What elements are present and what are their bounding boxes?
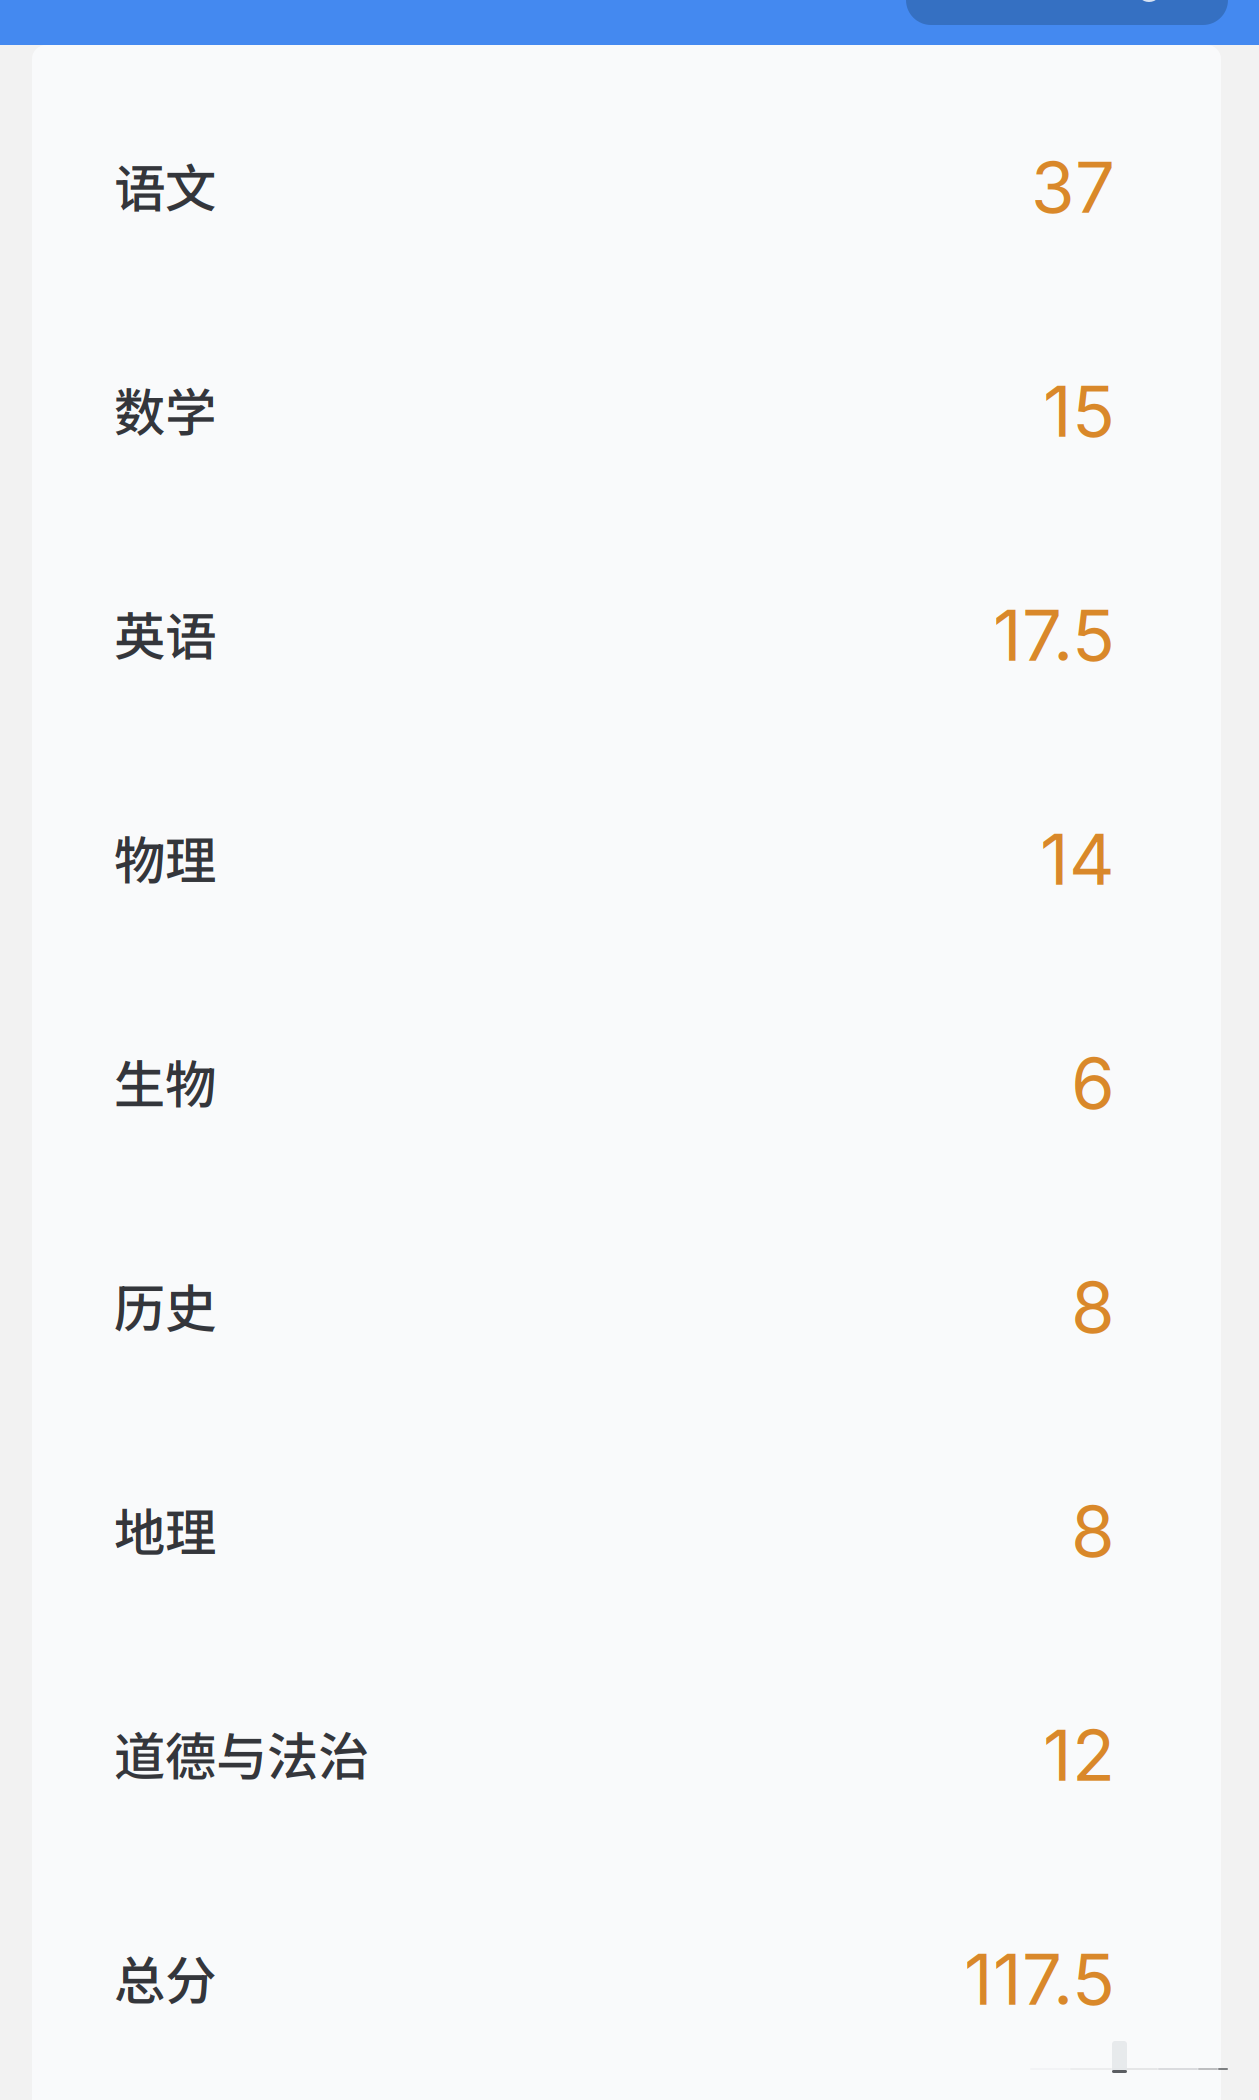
- staticText: 语文: [114, 148, 216, 222]
- staticText: 英语: [114, 596, 216, 670]
- staticText: 15: [1043, 368, 1115, 454]
- staticText: 8: [1071, 1488, 1115, 1574]
- staticText: 道德与法治: [114, 1716, 369, 1790]
- button[interactable]: 物理: [32, 745, 1221, 969]
- staticText: 12: [1043, 1712, 1115, 1798]
- staticText: 数学: [114, 372, 216, 446]
- staticText: 历史: [114, 1268, 216, 1342]
- button[interactable]: 总分: [32, 1865, 1221, 2089]
- button[interactable]: 生物: [32, 969, 1221, 1193]
- button[interactable]: 地理: [32, 1417, 1221, 1641]
- staticText: 总分: [114, 1940, 216, 2014]
- staticText: 6: [1071, 1040, 1115, 1126]
- staticText: 17.5: [993, 592, 1115, 678]
- staticText: 14: [1040, 816, 1115, 902]
- button[interactable]: Mini program menu: [906, 0, 1228, 25]
- button[interactable]: 数学: [32, 297, 1221, 521]
- button[interactable]: 语文: [32, 73, 1221, 297]
- staticText: 117.5: [964, 1936, 1115, 2022]
- button[interactable]: 英语: [32, 521, 1221, 745]
- staticText: 8: [1071, 1264, 1115, 1350]
- button[interactable]: 道德与法治: [32, 1641, 1221, 1865]
- button[interactable]: 历史: [32, 1193, 1221, 1417]
- staticText: 生物: [114, 1044, 216, 1118]
- staticText: 地理: [114, 1492, 216, 1566]
- staticText: 37: [1031, 144, 1115, 230]
- staticText: 物理: [114, 820, 216, 894]
